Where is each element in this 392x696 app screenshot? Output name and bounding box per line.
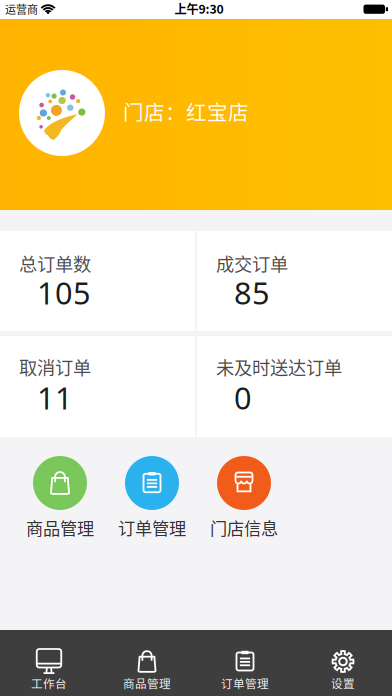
staticText: 订单管理 <box>221 675 269 692</box>
button[interactable]: 门店：红宝店 <box>0 0 392 210</box>
staticText: 上午9:30 <box>174 0 223 17</box>
staticText: 取消订单 <box>19 353 91 380</box>
button[interactable]: 成交订单 <box>197 231 392 331</box>
staticText: 未及时送达订单 <box>216 353 342 380</box>
button[interactable]: 总订单数 <box>0 231 195 331</box>
staticText: 85 <box>234 272 270 313</box>
button[interactable]: 订单管理 <box>196 630 294 696</box>
staticText: 总订单数 <box>19 250 91 276</box>
staticText: 门店：红宝店 <box>123 96 249 126</box>
button[interactable]: 未及时送达订单 <box>197 336 392 437</box>
button[interactable]: 门店信息 <box>198 456 290 541</box>
staticText: 运营商 <box>5 1 38 17</box>
button[interactable]: 工作台 <box>0 630 98 696</box>
staticText: 105 <box>37 272 91 313</box>
staticText: 设置 <box>331 675 355 692</box>
staticText: 工作台 <box>31 675 67 692</box>
button[interactable]: 商品管理 <box>98 630 196 696</box>
button[interactable]: 商品管理 <box>14 456 106 541</box>
staticText: 11 <box>37 377 73 418</box>
button[interactable]: 设置 <box>294 630 392 696</box>
staticText: 商品管理 <box>26 515 94 540</box>
staticText: 成交订单 <box>216 250 288 276</box>
button[interactable]: 取消订单 <box>0 336 195 437</box>
staticText: 商品管理 <box>123 675 171 692</box>
staticText: 订单管理 <box>118 515 186 540</box>
staticText: 0 <box>234 377 252 418</box>
button[interactable]: 订单管理 <box>106 456 198 541</box>
staticText: 门店信息 <box>210 515 278 540</box>
